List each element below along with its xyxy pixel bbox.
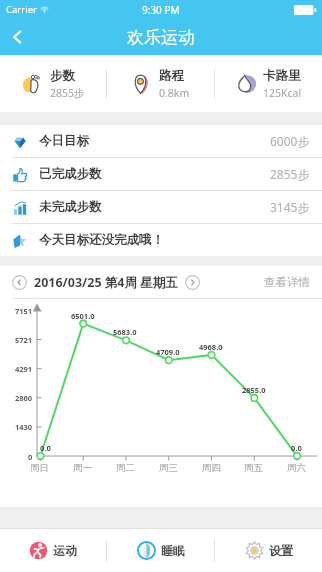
staticText: 周一	[73, 462, 92, 474]
button[interactable]: 步数	[0, 55, 106, 112]
button[interactable]: Back	[0, 19, 36, 55]
button[interactable]: Next day	[185, 275, 200, 290]
staticText: Carrier	[6, 3, 37, 16]
staticText: 周三	[159, 462, 178, 474]
staticText: 2016/03/25 第4周 星期五	[34, 274, 178, 291]
staticText: 周四	[202, 462, 221, 474]
button[interactable]: 已完成步数	[0, 158, 322, 190]
staticText: 周二	[116, 462, 135, 474]
staticText: 5721	[15, 335, 33, 345]
staticText: 2855.0	[242, 385, 266, 395]
staticText: 设置	[269, 543, 293, 558]
button[interactable]: 查看详情	[264, 275, 310, 289]
button[interactable]: 卡路里	[215, 55, 322, 112]
staticText: 9:30 PM	[142, 3, 180, 17]
staticText: 今日目标	[39, 133, 89, 149]
staticText: 周六	[287, 462, 306, 474]
staticText: 7151	[15, 306, 33, 316]
staticText: 睡眠	[161, 543, 185, 558]
staticText: 4968.0	[199, 342, 223, 352]
staticText: 4709.0	[156, 347, 180, 357]
staticText: 卡路里	[263, 68, 301, 84]
staticText: 3145步	[270, 199, 310, 215]
staticText: 路程	[159, 68, 184, 84]
staticText: 1430	[15, 422, 33, 432]
staticText: 周日	[30, 462, 49, 474]
staticText: 125Kcal	[263, 86, 302, 100]
button[interactable]: 设置	[215, 529, 322, 572]
staticText: 欢乐运动	[127, 27, 195, 48]
staticText: 0.0	[291, 443, 302, 453]
staticText: 6501.0	[71, 311, 95, 321]
staticText: 0.8km	[159, 86, 190, 100]
staticText: 0.0	[40, 443, 51, 453]
staticText: 2855步	[270, 166, 310, 182]
staticText: 4291	[15, 364, 33, 374]
button[interactable]: 未完成步数	[0, 191, 322, 223]
button[interactable]: 睡眠	[107, 529, 214, 572]
staticText: 0	[28, 452, 33, 462]
staticText: 周五	[244, 462, 263, 474]
staticText: 2860	[15, 393, 33, 403]
staticText: 6000步	[270, 133, 310, 149]
staticText: 已完成步数	[39, 166, 102, 182]
staticText: 运动	[53, 543, 77, 558]
staticText: 今天目标还没完成哦！	[39, 232, 164, 248]
staticText: 未完成步数	[39, 199, 102, 215]
button[interactable]: 路程	[107, 55, 214, 112]
staticText: 5683.0	[113, 327, 137, 337]
button[interactable]: 今天目标还没完成哦！	[0, 224, 322, 256]
button[interactable]: Previous day	[12, 275, 27, 290]
staticText: 2855步	[50, 86, 85, 100]
staticText: 查看详情	[264, 275, 310, 289]
button[interactable]: 今日目标	[0, 125, 322, 157]
staticText: 步数	[50, 68, 75, 84]
button[interactable]: 运动	[0, 529, 106, 572]
